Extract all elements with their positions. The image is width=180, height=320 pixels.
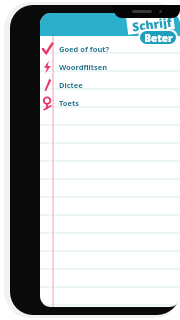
button[interactable]: Dictee xyxy=(40,76,180,94)
button[interactable]: Woordflitsen xyxy=(40,58,180,76)
staticText: Dictee xyxy=(59,80,83,90)
staticText: Toets xyxy=(59,98,79,108)
staticText: Beter xyxy=(144,31,173,44)
button[interactable]: Toets xyxy=(40,94,180,112)
staticText: Goed of fout? xyxy=(59,44,110,54)
button[interactable]: Schrijf Beter logo xyxy=(126,14,178,47)
staticText: Schrijf xyxy=(131,14,173,34)
button[interactable]: Goed of fout? xyxy=(40,40,180,58)
staticText: Woordflitsen xyxy=(59,62,108,72)
